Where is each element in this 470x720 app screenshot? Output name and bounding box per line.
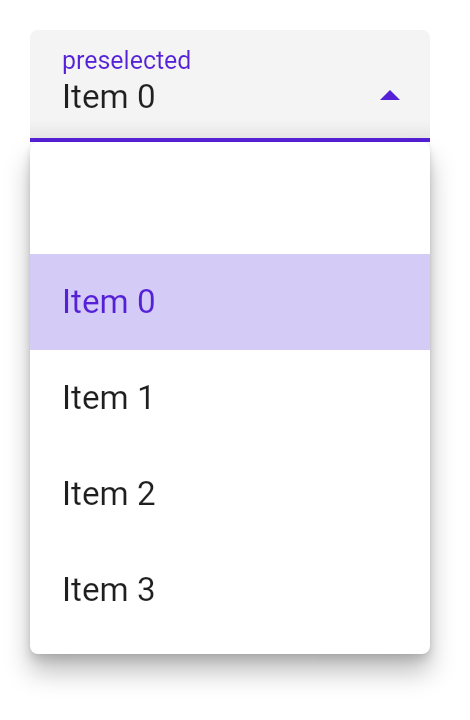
button[interactable]: Item 1 <box>30 350 430 446</box>
button[interactable]: Item 3 <box>30 542 430 638</box>
staticText: Item 3 <box>62 570 156 609</box>
staticText: Item 2 <box>62 474 156 513</box>
button[interactable]: preselected <box>30 30 430 142</box>
button[interactable]: Item 0 <box>30 254 430 350</box>
staticText: preselected <box>62 46 192 75</box>
button[interactable]: Item 2 <box>30 446 430 542</box>
staticText: Item 0 <box>62 282 156 321</box>
staticText: Item 1 <box>62 378 156 417</box>
staticText: Item 0 <box>62 77 156 116</box>
button[interactable]: Collapse dropdown <box>366 72 414 120</box>
